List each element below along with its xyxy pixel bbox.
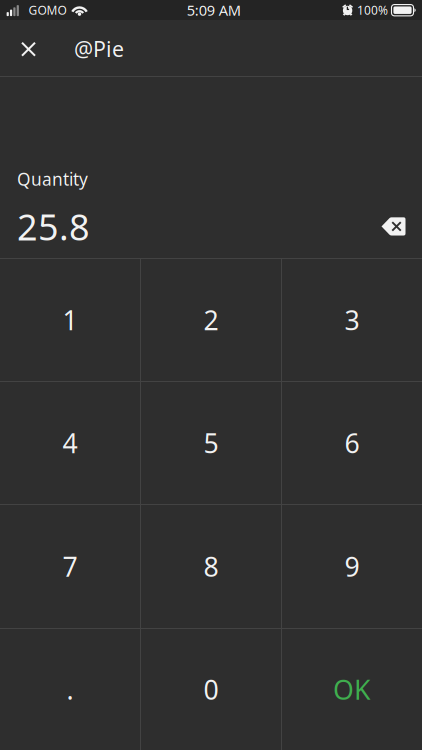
button[interactable]: Delete [381, 217, 406, 236]
button[interactable]: . [0, 629, 140, 750]
button[interactable]: Close [0, 20, 57, 76]
staticText: OK [333, 672, 371, 707]
button[interactable]: 5 [141, 382, 281, 504]
button[interactable]: 4 [0, 382, 140, 504]
button[interactable]: 6 [282, 382, 422, 504]
staticText: @Pie [74, 34, 124, 63]
button[interactable]: 2 [141, 259, 281, 381]
staticText: 1 [62, 302, 77, 338]
staticText: 4 [62, 425, 77, 461]
staticText: 7 [62, 549, 77, 584]
staticText: 0 [203, 672, 218, 707]
button[interactable]: 8 [141, 505, 281, 628]
staticText: 3 [344, 302, 359, 338]
staticText: 2 [203, 302, 218, 338]
button[interactable]: 3 [282, 259, 422, 381]
staticText: 100% [357, 2, 388, 18]
button[interactable]: 0 [141, 629, 281, 750]
staticText: . [66, 672, 73, 707]
staticText: 5:09 AM [187, 0, 241, 20]
staticText: 25.8 [17, 202, 90, 250]
staticText: 9 [344, 549, 359, 584]
button[interactable]: 7 [0, 505, 140, 628]
staticText: 6 [344, 425, 359, 461]
button[interactable]: 1 [0, 259, 140, 381]
staticText: Quantity [17, 167, 88, 190]
staticText: 8 [203, 549, 218, 584]
button[interactable]: OK [282, 629, 422, 750]
staticText: 5 [203, 425, 218, 461]
staticText: GOMO [28, 2, 66, 18]
button[interactable]: 9 [282, 505, 422, 628]
